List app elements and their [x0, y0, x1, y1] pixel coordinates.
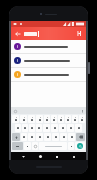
button[interactable] — [22, 124, 28, 132]
button[interactable] — [52, 133, 59, 141]
button[interactable]: Recents — [53, 153, 60, 160]
button[interactable] — [36, 124, 42, 132]
button[interactable]: Voice search — [75, 29, 84, 38]
button[interactable] — [20, 115, 27, 123]
button[interactable]: Symbols — [12, 142, 23, 150]
button[interactable] — [29, 124, 35, 132]
button[interactable]: Suggestions — [13, 109, 17, 113]
button[interactable] — [59, 124, 66, 132]
button[interactable] — [36, 133, 43, 141]
button[interactable] — [79, 115, 85, 123]
button[interactable]: Home — [37, 153, 44, 160]
button[interactable] — [36, 115, 43, 123]
button[interactable] — [60, 133, 67, 141]
button[interactable]: Hide keyboard — [20, 153, 27, 160]
button[interactable] — [58, 115, 64, 123]
button[interactable]: Backspace — [76, 133, 85, 141]
button[interactable] — [65, 115, 71, 123]
button[interactable]: Emoji — [32, 142, 38, 150]
button[interactable] — [67, 124, 74, 132]
button[interactable] — [11, 54, 86, 67]
button[interactable] — [44, 133, 51, 141]
button[interactable]: Back — [13, 29, 22, 38]
button[interactable] — [24, 142, 31, 150]
button[interactable] — [12, 115, 19, 123]
button[interactable] — [24, 29, 75, 38]
button[interactable] — [51, 124, 58, 132]
button[interactable] — [68, 142, 74, 150]
button[interactable] — [51, 115, 57, 123]
button[interactable] — [21, 133, 27, 141]
button[interactable] — [28, 133, 35, 141]
button[interactable]: Voice input — [80, 109, 84, 113]
button[interactable] — [44, 115, 50, 123]
button[interactable]: Shift — [12, 133, 20, 141]
button[interactable] — [68, 133, 75, 141]
button[interactable] — [75, 124, 82, 132]
button[interactable] — [11, 40, 86, 53]
button[interactable]: Switch keyboard — [70, 153, 77, 160]
button[interactable] — [15, 124, 21, 132]
button[interactable]: Search — [75, 142, 85, 150]
button[interactable] — [72, 115, 78, 123]
button[interactable]: Space — [39, 142, 67, 150]
button[interactable] — [43, 124, 50, 132]
button[interactable] — [11, 68, 86, 81]
button[interactable] — [28, 115, 35, 123]
